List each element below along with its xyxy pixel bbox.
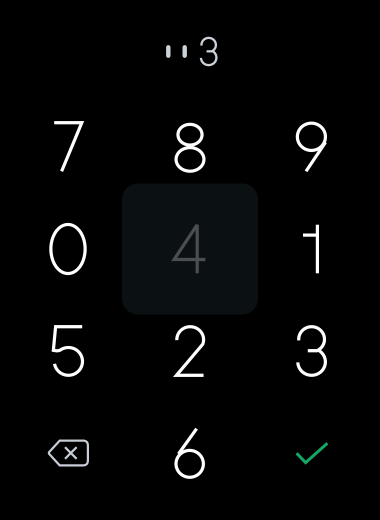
button[interactable]: 0 [0, 183, 136, 314]
button[interactable]: 1 [244, 183, 380, 314]
button[interactable]: 8 [122, 81, 258, 212]
button[interactable]: 9 [244, 81, 380, 212]
button[interactable]: Delete [0, 387, 136, 518]
button[interactable]: Confirm [244, 387, 380, 518]
button[interactable]: 7 [0, 81, 136, 212]
button[interactable]: 2 [122, 285, 258, 416]
button[interactable]: 4 [122, 183, 258, 314]
button[interactable]: 6 [122, 387, 258, 518]
button[interactable]: 3 [244, 285, 380, 416]
button[interactable]: 5 [0, 285, 136, 416]
